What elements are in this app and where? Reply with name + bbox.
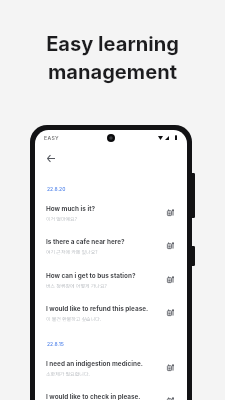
- button[interactable]: Copy phrase: [164, 361, 176, 373]
- staticText: 22.8.15: [47, 341, 64, 347]
- button[interactable]: I would like to check in please.: [35, 387, 187, 400]
- staticText: 이거 얼마예요?: [46, 215, 77, 222]
- button[interactable]: Copy phrase: [164, 273, 176, 285]
- staticText: I would like to refund this please.: [46, 305, 149, 313]
- staticText: 버스 정류장에 어떻게 가나요?: [46, 282, 107, 289]
- button[interactable]: I need an indigestion medicine.: [35, 354, 187, 382]
- button[interactable]: Back: [44, 151, 58, 165]
- staticText: How much is it?: [46, 205, 96, 213]
- staticText: 22.8.20: [47, 186, 66, 192]
- staticText: I would like to check in please.: [46, 393, 141, 400]
- staticText: How can i get to bus station?: [46, 272, 136, 280]
- button[interactable]: How can i get to bus station?: [35, 266, 187, 294]
- button[interactable]: How much is it?: [35, 199, 187, 227]
- button[interactable]: Copy phrase: [164, 306, 176, 318]
- button[interactable]: Copy phrase: [164, 394, 176, 400]
- staticText: EASY: [44, 135, 59, 141]
- button[interactable]: Is there a cafe near here?: [35, 232, 187, 260]
- staticText: Is there a cafe near here?: [46, 238, 125, 246]
- button[interactable]: I would like to refund this please.: [35, 299, 187, 327]
- staticText: 이 물건 환불하고 싶습니다.: [46, 315, 102, 322]
- staticText: 소화제가 필요합니다.: [46, 370, 90, 377]
- staticText: 여기 근처에 카페 있나요?: [46, 248, 98, 255]
- button[interactable]: Copy phrase: [164, 239, 176, 251]
- staticText: I need an indigestion medicine.: [46, 360, 143, 368]
- button[interactable]: Copy phrase: [164, 206, 176, 218]
- staticText: Easy learning management: [0, 32, 225, 84]
